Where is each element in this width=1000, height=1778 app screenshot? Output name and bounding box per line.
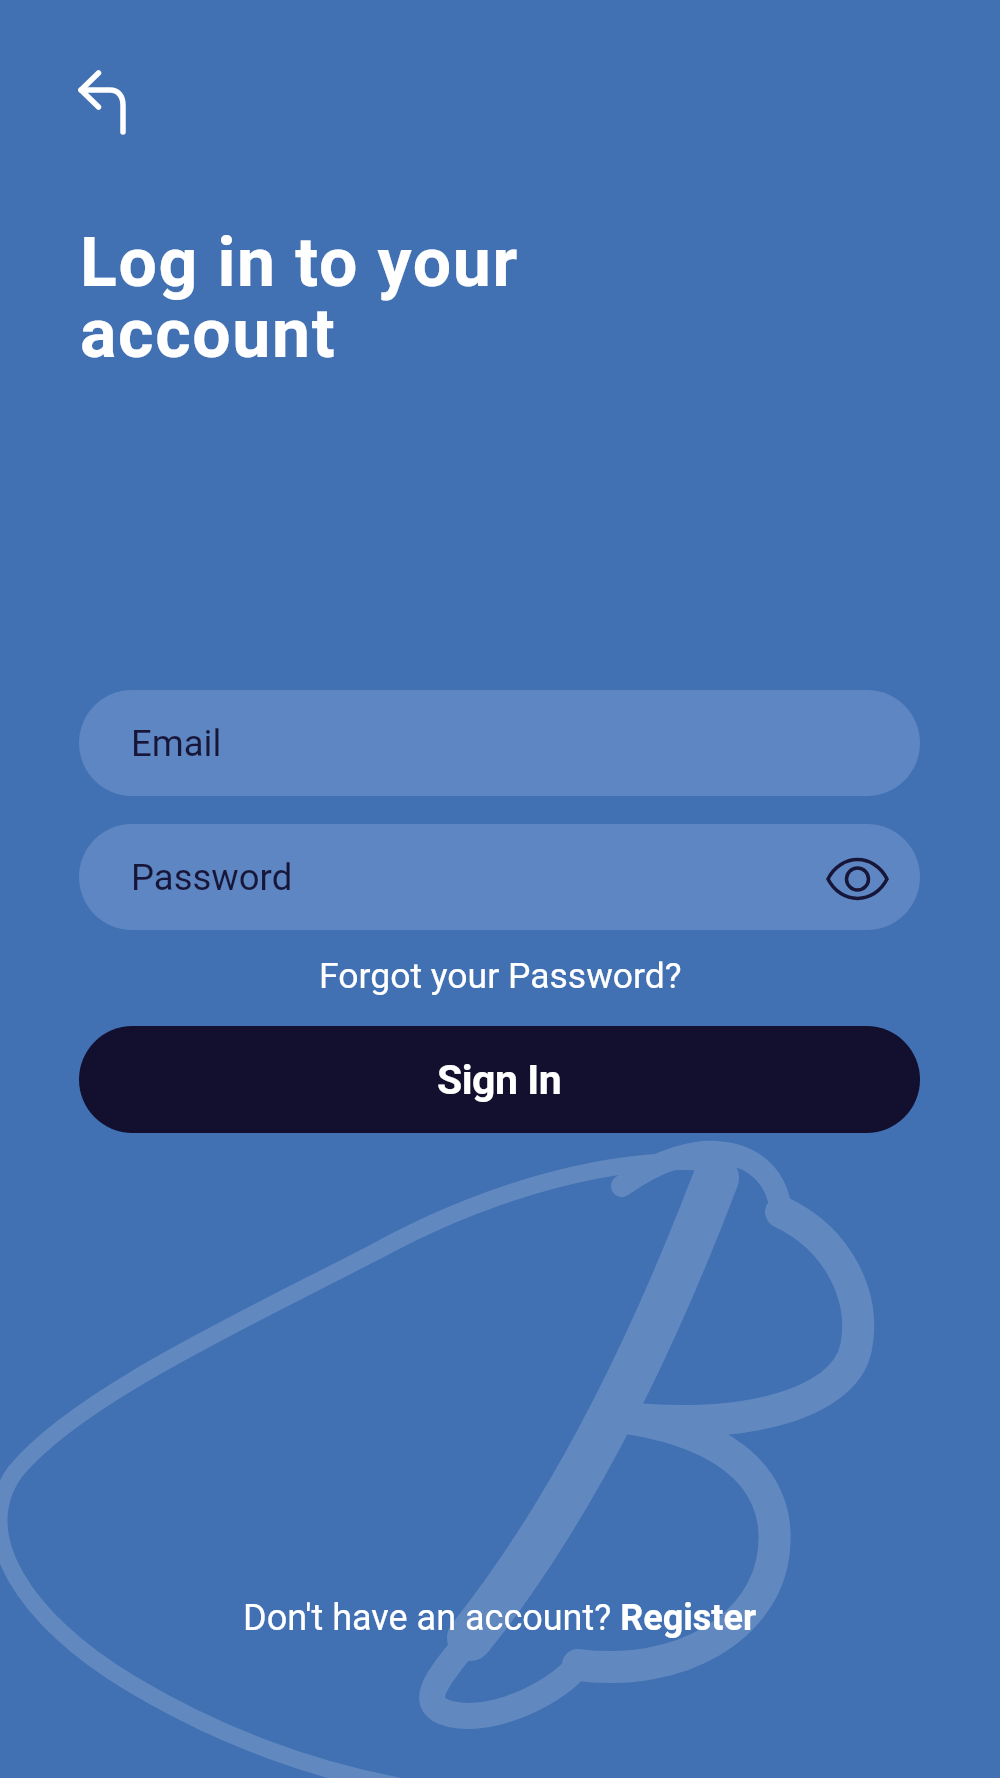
button[interactable]: Don't have an account? Register — [243, 1597, 757, 1639]
staticText: Password — [131, 856, 293, 899]
button[interactable]: Sign In — [79, 1026, 920, 1133]
button[interactable]: Forgot your Password? — [319, 955, 682, 997]
staticText: Sign In — [437, 1056, 562, 1104]
button[interactable]: Password — [79, 824, 920, 930]
staticText: Email — [131, 722, 222, 765]
staticText: Log in to your account — [80, 223, 519, 374]
button[interactable] — [75, 65, 131, 137]
button[interactable]: Email — [79, 690, 920, 796]
